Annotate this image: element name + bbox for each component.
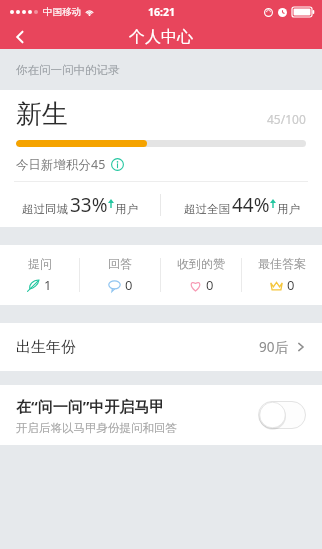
button[interactable]: 最佳答案 [242,245,322,305]
button[interactable]: 收到的赞 [161,245,241,305]
button[interactable]: 出生年份 [0,323,322,371]
staticText: 回答 [108,256,132,271]
button[interactable]: 回答 [80,245,160,305]
staticText: 个人中心 [129,27,193,47]
staticText: 出生年份 [16,338,76,357]
staticText: 0 [287,276,295,294]
staticText: 提问 [28,256,52,271]
staticText: 44% [232,192,270,218]
staticText: 最佳答案 [258,256,306,271]
button[interactable]: Toggle vest mode [258,401,306,429]
staticText: 45/100 [267,111,306,127]
staticText: 超过同城 [22,202,68,216]
button[interactable]: Back [0,24,40,49]
staticText: 你在问一问中的记录 [16,63,120,77]
staticText: 超过全国 [184,202,230,216]
staticText: 在“问一问”中开启马甲 [16,396,165,416]
button[interactable]: 提问 [0,245,79,305]
staticText: 新生 [16,98,68,131]
staticText: 90后 [259,338,288,356]
staticText: 33% [70,192,108,218]
button[interactable]: Info [111,158,124,171]
staticText: 1 [44,276,52,294]
staticText: 16:21 [148,5,175,19]
staticText: 今日新增积分45 [16,156,106,173]
staticText: 收到的赞 [177,256,225,271]
staticText: 开启后将以马甲身份提问和回答 [16,421,177,435]
staticText: 0 [206,276,214,294]
staticText: 用户 [277,202,300,216]
staticText: 0 [125,276,133,294]
staticText: 用户 [115,202,138,216]
staticText: 中国移动 [43,6,81,18]
